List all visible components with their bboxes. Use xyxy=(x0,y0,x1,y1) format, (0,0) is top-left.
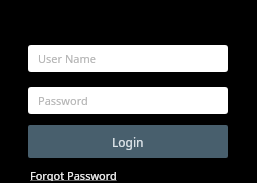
staticText: Forgot Password xyxy=(30,168,117,181)
staticText: Login xyxy=(112,134,144,150)
staticText: Password xyxy=(38,93,88,108)
button[interactable]: Password xyxy=(28,87,228,114)
button[interactable]: Forgot Password xyxy=(28,167,121,183)
button[interactable]: Login xyxy=(28,125,228,158)
button[interactable]: User Name xyxy=(28,45,228,72)
staticText: User Name xyxy=(38,51,96,66)
